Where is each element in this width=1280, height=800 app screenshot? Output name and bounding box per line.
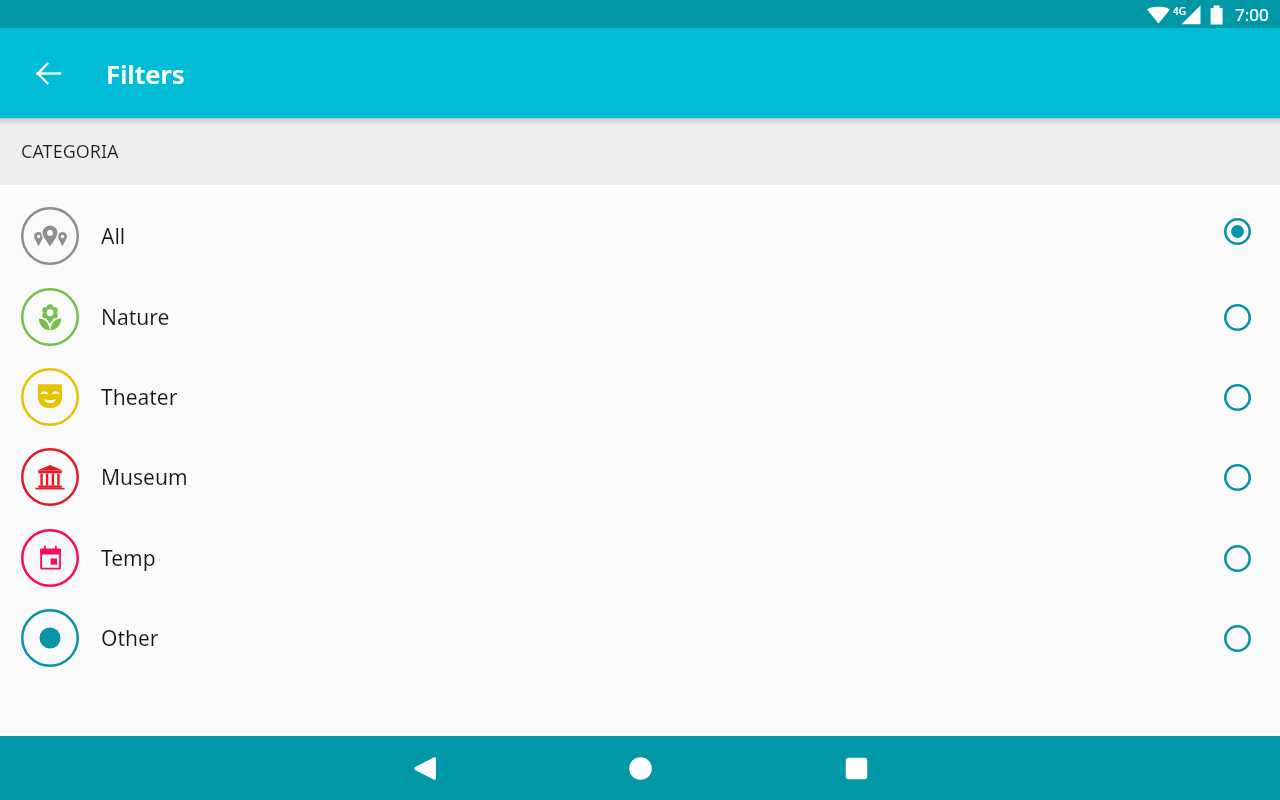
staticText: 7:00 [1235,3,1269,26]
staticText: 4G [1173,4,1186,18]
button[interactable]: Back [384,736,464,800]
staticText: Filters [106,56,185,91]
button[interactable]: Recents [816,736,896,800]
staticText: CATEGORIA [21,139,119,164]
button[interactable]: Other [0,598,1280,678]
button[interactable]: Temp [0,518,1280,598]
button[interactable]: Nature [0,277,1280,357]
staticText: Theater [101,383,178,412]
button[interactable]: Museum [0,437,1280,517]
staticText: Temp [101,544,156,573]
staticText: Museum [101,463,188,492]
staticText: All [101,222,126,251]
button[interactable]: Home [600,736,680,800]
button[interactable]: All [0,196,1280,276]
staticText: Nature [101,303,170,332]
button[interactable]: Back [16,41,80,105]
button[interactable]: Theater [0,357,1280,437]
staticText: Other [101,624,159,653]
